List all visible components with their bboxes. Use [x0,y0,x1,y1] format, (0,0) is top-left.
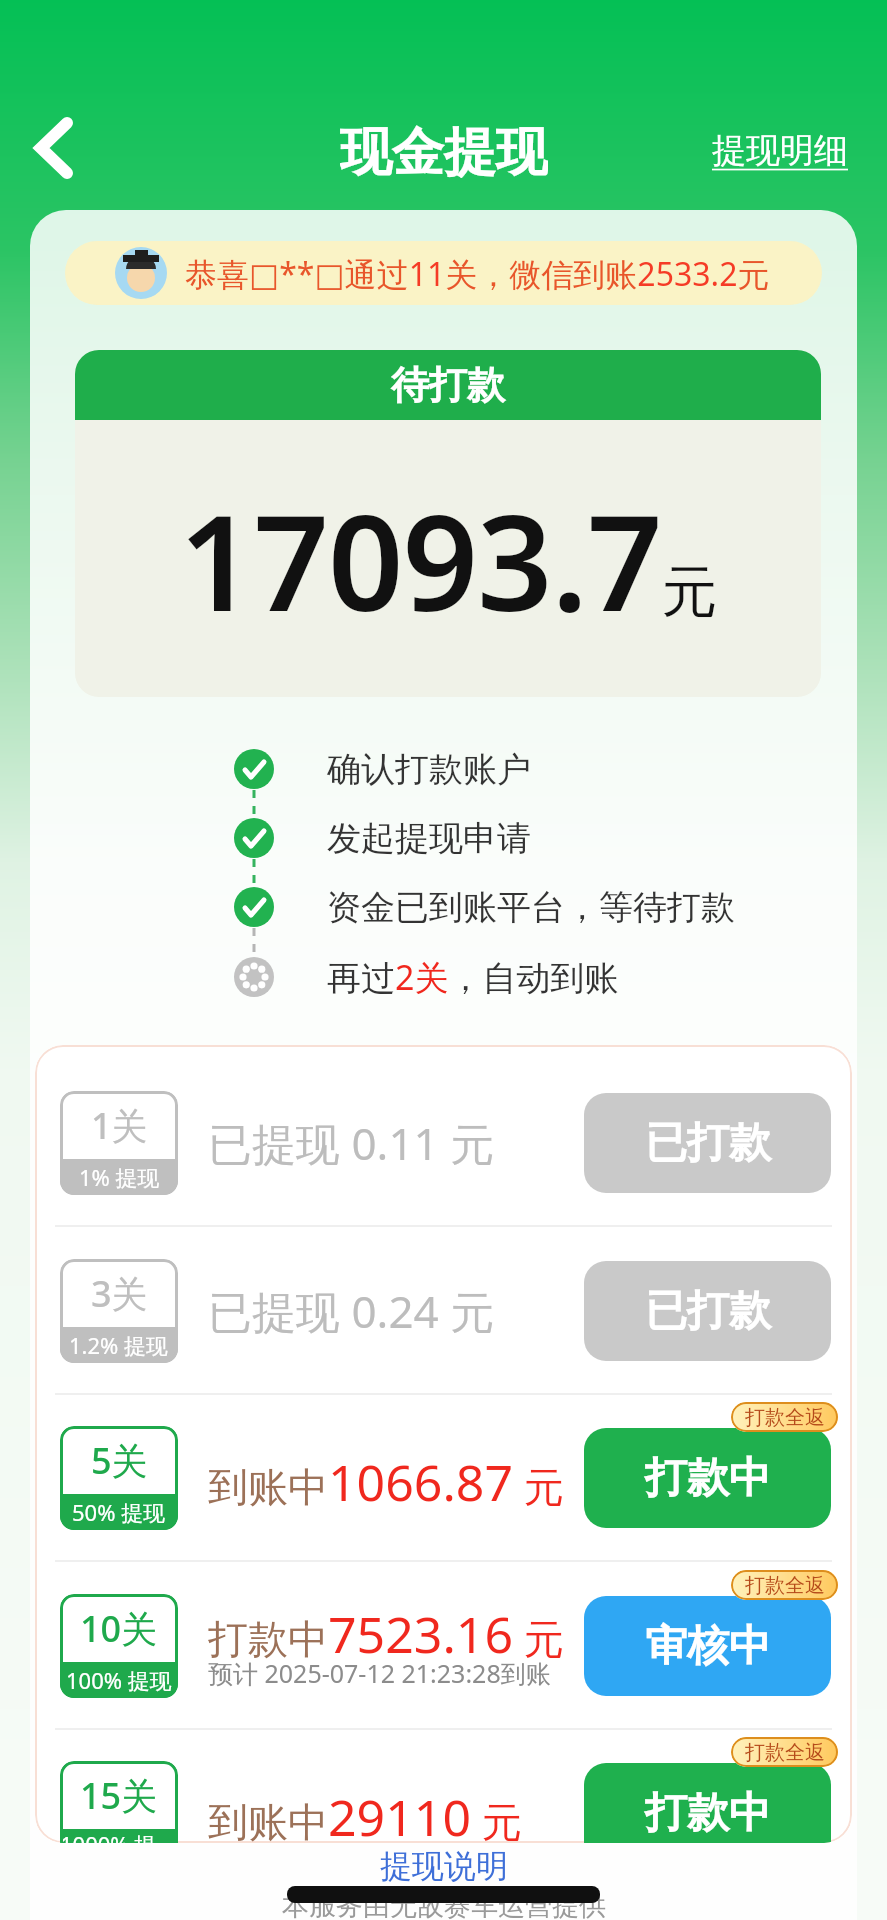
staticText: 50% 提现 [72,1497,166,1527]
staticText: 已打款 [645,1117,771,1170]
staticText: 本服务由无敌赛车运营提供 [282,1889,606,1920]
staticText: 发起提现申请 [327,817,531,860]
staticText: 已提现 0.11 元 [208,1113,495,1173]
staticText: 打款中7523.16 元 [208,1600,564,1660]
staticText: 审核中 [645,1620,771,1673]
staticText: 打款全返 [745,1740,825,1765]
staticText: 1000% 提现 [60,1829,178,1843]
staticText: 再过2关，自动到账 [327,954,619,1000]
staticText: 预计 2025-07-12 21:23:28到账 [208,1656,551,1688]
staticText: 1% 提现 [79,1162,160,1192]
staticText: 待打款 [391,361,505,409]
staticText: 资金已到账平台，等待打款 [327,886,735,929]
staticText: 提现说明 [380,1846,508,1886]
staticText: 已打款 [645,1285,771,1338]
staticText: 15关 [80,1771,158,1820]
staticText: 1关 [91,1101,148,1150]
staticText: 现金提现 [340,120,548,178]
staticText: 到账中29110 元 [208,1783,522,1843]
staticText: 到账中1066.87 元 [208,1448,564,1508]
staticText: 确认打款账户 [327,748,531,791]
staticText: 10关 [80,1604,158,1653]
staticText: 提现明细 [712,129,848,172]
staticText: 1.2% 提现 [69,1330,169,1360]
staticText: 打款中 [645,1452,771,1505]
staticText: 100% 提现 [66,1665,172,1695]
staticText: 恭喜□**□通过11关，微信到账2533.2元 [185,252,770,296]
staticText: 打款全返 [745,1405,825,1430]
staticText: 打款中 [645,1787,771,1840]
staticText: 5关 [91,1436,148,1485]
staticText: 3关 [91,1269,148,1318]
staticText: 17093.7元 [179,470,718,650]
staticText: 打款全返 [745,1573,825,1598]
staticText: 已提现 0.24 元 [208,1281,495,1341]
